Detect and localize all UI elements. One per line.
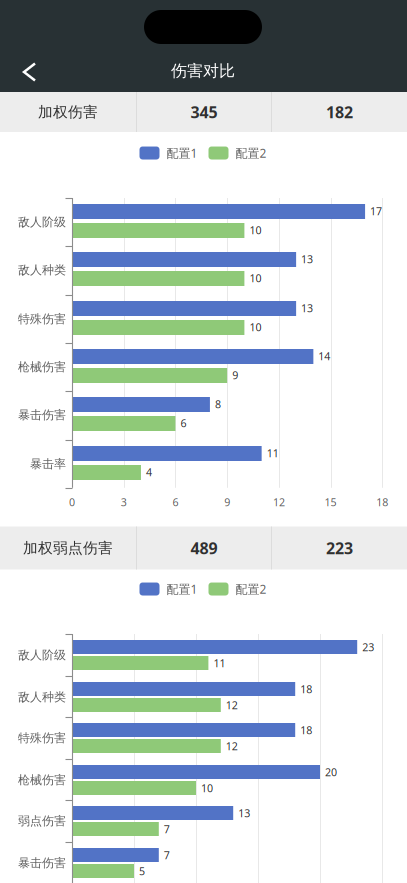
staticText: 3 — [121, 495, 127, 509]
staticText: 18 — [300, 682, 312, 696]
staticText: 10 — [249, 320, 261, 334]
staticText: 10 — [249, 223, 261, 237]
staticText: 13 — [301, 252, 313, 266]
staticText: 11 — [267, 446, 279, 460]
staticText: 敌人阶级 — [18, 648, 66, 662]
staticText: 敌人种类 — [18, 690, 66, 704]
staticText: 489 — [190, 537, 217, 559]
staticText: 17 — [370, 204, 382, 218]
staticText: 6 — [180, 416, 186, 430]
staticText: 暴击率 — [30, 457, 66, 471]
staticText: 加权弱点伤害 — [23, 539, 113, 557]
staticText: 18 — [300, 723, 312, 737]
staticText: 配置2 — [235, 581, 266, 597]
staticText: 223 — [326, 537, 353, 559]
staticText: 12 — [273, 495, 285, 509]
staticText: 暴击伤害 — [18, 856, 66, 870]
staticText: 10 — [201, 781, 213, 795]
staticText: 14 — [318, 349, 330, 363]
staticText: 12 — [226, 698, 238, 712]
staticText: 15 — [325, 495, 337, 509]
staticText: 枪械伤害 — [18, 773, 66, 787]
staticText: 18 — [376, 495, 388, 509]
staticText: 13 — [301, 301, 313, 315]
staticText: 配置1 — [166, 145, 197, 161]
staticText: 伤害对比 — [171, 61, 235, 81]
staticText: 345 — [190, 101, 217, 123]
staticText: 20 — [325, 765, 337, 779]
staticText: 0 — [69, 495, 75, 509]
staticText: 13 — [238, 806, 250, 820]
staticText: 7 — [164, 848, 170, 862]
staticText: 弱点伤害 — [18, 814, 66, 828]
staticText: 暴击伤害 — [18, 408, 66, 422]
staticText: 8 — [215, 397, 221, 411]
staticText: 182 — [326, 101, 353, 123]
staticText: 特殊伤害 — [18, 312, 66, 326]
staticText: 23 — [362, 640, 374, 654]
staticText: 敌人种类 — [18, 263, 66, 277]
staticText: 配置2 — [235, 145, 266, 161]
staticText: 特殊伤害 — [18, 731, 66, 745]
staticText: 敌人阶级 — [18, 215, 66, 229]
staticText: 10 — [249, 271, 261, 285]
staticText: 9 — [232, 368, 238, 382]
button[interactable]: 加权伤害 — [0, 92, 407, 132]
staticText: 9 — [224, 495, 230, 509]
staticText: 7 — [164, 822, 170, 836]
staticText: 11 — [213, 656, 225, 670]
staticText: 5 — [139, 864, 145, 878]
button[interactable]: Back — [13, 50, 57, 94]
staticText: 12 — [226, 739, 238, 753]
button[interactable]: 加权弱点伤害 — [0, 526, 407, 569]
staticText: 加权伤害 — [38, 103, 98, 121]
staticText: 枪械伤害 — [18, 360, 66, 374]
staticText: 6 — [172, 495, 178, 509]
staticText: 配置1 — [166, 581, 197, 597]
staticText: 4 — [146, 465, 152, 479]
